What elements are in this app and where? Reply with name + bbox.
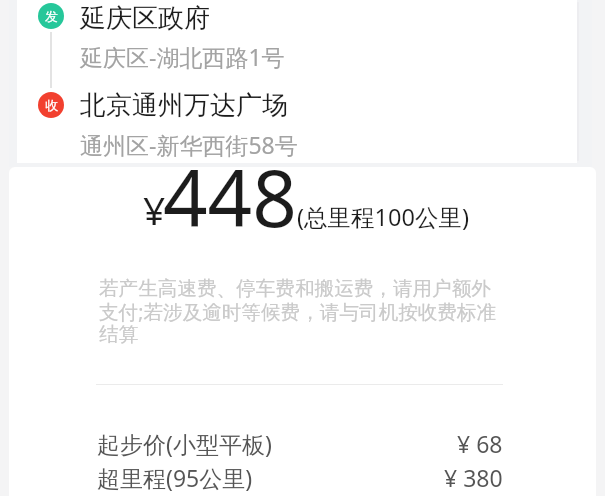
staticText: 延庆区政府 <box>80 2 210 35</box>
staticText: ¥ 380 <box>444 462 503 493</box>
staticText: 北京通州万达广场 <box>80 89 288 122</box>
button[interactable]: 发 <box>0 0 605 84</box>
staticText: 通州区-新华西街58号 <box>80 129 298 160</box>
staticText: 发 <box>45 8 58 24</box>
button[interactable]: 收 <box>0 84 605 163</box>
staticText: 448 <box>163 167 297 250</box>
staticText: 延庆区-湖北西路1号 <box>80 41 285 72</box>
staticText: 起步价(小型平板) <box>97 428 272 459</box>
button[interactable]: 起步价(小型平板) <box>9 428 596 459</box>
staticText: 超里程(95公里) <box>97 462 253 493</box>
staticText: (总里程100公里) <box>297 201 469 233</box>
staticText: 若产生高速费、停车费和搬运费，请用户额外支付;若涉及逾时等候费，请与司机按收费标… <box>99 276 503 347</box>
staticText: 收 <box>45 97 58 113</box>
button[interactable]: 超里程(95公里) <box>9 462 596 493</box>
staticText: ¥ <box>143 183 166 236</box>
staticText: ¥ 68 <box>457 428 503 459</box>
